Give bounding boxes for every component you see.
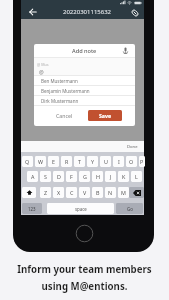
staticText: M [121, 189, 126, 196]
staticText: Dirk Mustermann [41, 98, 79, 104]
staticText: @ Mus [37, 62, 49, 67]
staticText: Ben Mustermann [41, 78, 78, 84]
staticText: T [78, 158, 81, 165]
staticText: H [96, 173, 100, 180]
staticText: Q [25, 158, 30, 165]
staticText: B [96, 189, 100, 196]
button[interactable]: T [74, 156, 85, 167]
staticText: Go [127, 206, 133, 212]
staticText: U [104, 158, 108, 165]
button[interactable]: Save [88, 110, 122, 121]
staticText: Z [44, 189, 48, 196]
staticText: J [110, 173, 112, 180]
button[interactable]: Ben Mustermann [34, 76, 135, 85]
staticText: Save [99, 112, 112, 119]
button[interactable]: Go [116, 203, 143, 214]
button[interactable]: A [27, 171, 38, 182]
staticText: Benjamin Mustermann [41, 88, 90, 94]
staticText: Add note [72, 47, 97, 55]
staticText: S [44, 173, 47, 180]
staticText: V [83, 189, 87, 196]
staticText: @ [39, 68, 44, 75]
button[interactable]: W [35, 156, 46, 167]
staticText: E [52, 158, 55, 165]
staticText: Y [91, 158, 95, 165]
button[interactable]: Voice input [121, 46, 130, 55]
button[interactable]: M [118, 187, 129, 198]
button[interactable]: X [53, 187, 64, 198]
button[interactable]: B [92, 187, 103, 198]
button[interactable]: D [53, 171, 64, 182]
staticText: K [122, 173, 126, 180]
staticText: P [140, 158, 144, 165]
button[interactable]: Back [27, 6, 39, 18]
button[interactable]: S [40, 171, 51, 182]
staticText: F [70, 173, 73, 180]
button[interactable]: Y [87, 156, 98, 167]
button[interactable]: H [92, 171, 103, 182]
button[interactable]: C [66, 187, 77, 198]
staticText: N [108, 189, 113, 196]
staticText: G [83, 173, 87, 180]
button[interactable]: N [105, 187, 116, 198]
button[interactable]: E [48, 156, 59, 167]
button[interactable]: Benjamin Mustermann [34, 86, 135, 95]
button[interactable]: R [61, 156, 72, 167]
button[interactable]: U [100, 156, 111, 167]
staticText: Cancel [56, 112, 73, 119]
staticText: D [57, 173, 61, 180]
button[interactable]: Dirk Mustermann [34, 96, 135, 105]
staticText: Inform your team members using M@entions… [0, 263, 169, 293]
button[interactable]: J [105, 171, 116, 182]
staticText: W [38, 158, 44, 165]
staticText: I [118, 158, 120, 165]
button[interactable]: K [118, 171, 129, 182]
button[interactable]: 123 [22, 203, 42, 214]
staticText: C [70, 189, 74, 196]
button[interactable]: Z [40, 187, 51, 198]
button[interactable]: P [139, 156, 145, 167]
staticText: O [129, 158, 134, 165]
staticText: A [31, 173, 35, 180]
button[interactable]: Done [127, 144, 138, 150]
button[interactable]: Backspace [129, 187, 144, 198]
staticText: 123 [28, 206, 36, 212]
button[interactable]: Attach [130, 8, 140, 18]
staticText: X [57, 189, 61, 196]
button[interactable]: Home [75, 224, 94, 243]
button[interactable]: F [66, 171, 77, 182]
staticText: 20220301115632 [63, 8, 112, 16]
button[interactable]: I [113, 156, 124, 167]
staticText: space [75, 206, 87, 212]
button[interactable]: G [79, 171, 90, 182]
staticText: L [135, 173, 138, 180]
button[interactable]: Shift [22, 187, 36, 198]
button[interactable]: L [131, 171, 142, 182]
button[interactable]: O [126, 156, 137, 167]
button[interactable]: V [79, 187, 90, 198]
button[interactable]: Cancel [48, 110, 81, 121]
staticText: R [65, 158, 69, 165]
button[interactable]: space [47, 203, 114, 214]
button[interactable]: Q [22, 156, 33, 167]
